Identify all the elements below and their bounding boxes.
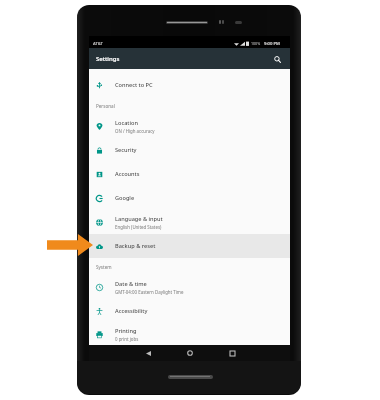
- button[interactable]: Back: [140, 345, 156, 361]
- staticText: Google: [115, 194, 135, 202]
- button[interactable]: Backup & reset: [89, 234, 290, 258]
- staticText: Accounts: [115, 170, 140, 178]
- button[interactable]: Accessibility: [89, 299, 290, 323]
- button[interactable]: Printing: [89, 323, 290, 345]
- staticText: ON / High accuracy: [115, 128, 155, 134]
- staticText: System: [96, 264, 112, 270]
- staticText: Printing: [115, 327, 137, 335]
- staticText: Connect to PC: [115, 81, 153, 89]
- button[interactable]: Language & input: [89, 210, 290, 234]
- staticText: Security: [115, 146, 137, 154]
- button[interactable]: Google: [89, 186, 290, 210]
- staticText: Settings: [96, 55, 120, 63]
- button[interactable]: Security: [89, 138, 290, 162]
- staticText: GMT-04:00 Eastern Daylight Time: [115, 289, 184, 295]
- button[interactable]: Search: [268, 50, 286, 68]
- staticText: Personal: [96, 103, 115, 109]
- button[interactable]: Home: [182, 345, 198, 361]
- staticText: 0 print jobs: [115, 336, 139, 342]
- button[interactable]: Accounts: [89, 162, 290, 186]
- staticText: 9:00 PM: [264, 41, 280, 47]
- button[interactable]: Connect to PC: [89, 73, 290, 97]
- button[interactable]: Date & time: [89, 275, 290, 299]
- staticText: English (United States): [115, 224, 162, 230]
- staticText: Location: [115, 119, 138, 127]
- staticText: 100%: [251, 41, 261, 46]
- button[interactable]: Location: [89, 114, 290, 138]
- button[interactable]: Recents: [224, 345, 240, 361]
- staticText: AT&T: [93, 41, 103, 47]
- staticText: Accessibility: [115, 307, 148, 315]
- staticText: Date & time: [115, 280, 147, 288]
- staticText: Backup & reset: [115, 242, 156, 250]
- staticText: Language & input: [115, 215, 163, 223]
